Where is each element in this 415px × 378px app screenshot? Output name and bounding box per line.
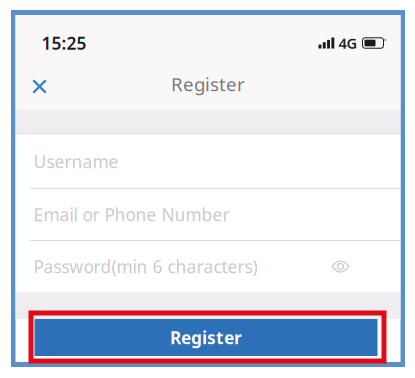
staticText: Register — [171, 72, 245, 96]
button[interactable]: Register — [34, 319, 377, 356]
staticText: 15:25 — [41, 31, 86, 54]
staticText: Email or Phone Number — [33, 203, 229, 226]
staticText: Register — [170, 326, 242, 349]
staticText: Username — [33, 150, 118, 173]
button[interactable]: Username — [15, 135, 400, 188]
button[interactable]: Close — [18, 64, 60, 108]
staticText: 4G — [338, 33, 357, 53]
staticText: Password(min 6 characters) — [33, 255, 257, 278]
button[interactable]: Password(min 6 characters) — [15, 241, 400, 292]
button[interactable]: Show password — [318, 241, 362, 292]
button[interactable]: Email or Phone Number — [15, 189, 400, 240]
